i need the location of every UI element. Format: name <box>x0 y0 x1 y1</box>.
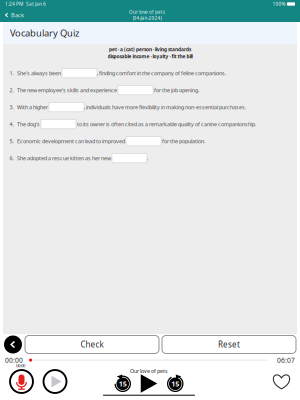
staticText: , individuals have more flexibility in m… <box>84 103 246 111</box>
staticText: Back <box>11 11 24 19</box>
staticText: The new employee's skills and experience <box>17 86 118 94</box>
staticText: . <box>147 154 148 162</box>
staticText: 2. <box>9 86 13 94</box>
button[interactable]: Play <box>131 374 167 393</box>
staticText: 6. <box>9 154 13 162</box>
staticText: 100% <box>272 1 285 7</box>
staticText: The dog's <box>17 120 41 128</box>
staticText: Check <box>80 339 103 350</box>
staticText: Reset <box>218 339 240 350</box>
staticText: She adopted a rescue kitten as her new <box>17 154 112 162</box>
staticText: Vocabulary Quiz <box>10 27 79 39</box>
staticText: 15 <box>119 379 127 389</box>
staticText: to its owner is often cited as a remarka… <box>76 120 256 128</box>
button[interactable]: Check <box>25 335 159 353</box>
button[interactable]: Record <box>10 370 33 393</box>
staticText: She's always been <box>17 69 62 77</box>
staticText: 15 <box>171 379 179 389</box>
staticText: With a higher <box>17 103 49 111</box>
staticText: pet · a (cat) person · living standards <box>109 46 191 52</box>
staticText: 3. <box>9 103 13 111</box>
button[interactable]: Play recording <box>43 370 66 393</box>
button[interactable]: Back <box>0 8 30 22</box>
staticText: , finding comfort in the company of feli… <box>97 69 226 77</box>
staticText: 00:00 <box>5 356 23 365</box>
button[interactable]: Reset <box>162 335 296 353</box>
button[interactable]: Forward 15 seconds <box>167 374 184 392</box>
staticText: 1. <box>9 69 13 77</box>
button[interactable]: Favourite <box>273 374 290 389</box>
staticText: Economic development can lead to improve… <box>17 137 126 145</box>
staticText: 1:24 PM Sat Jan 6 <box>5 1 46 7</box>
staticText: 4. <box>9 120 13 128</box>
staticText: 5. <box>9 137 13 145</box>
staticText: Our love of pets <box>129 9 165 15</box>
staticText: 00:00 <box>16 363 25 368</box>
staticText: for the job opening. <box>153 86 199 94</box>
staticText: 06:07 <box>277 356 295 365</box>
staticText: for the population. <box>161 137 205 145</box>
staticText: (04-Jan-2024) <box>132 15 161 21</box>
button[interactable]: Previous <box>4 335 22 353</box>
button[interactable]: Back 15 seconds <box>114 374 131 392</box>
staticText: Our love of pets <box>130 367 168 375</box>
staticText: disposable income · loyalty · fit the bi… <box>107 53 192 59</box>
